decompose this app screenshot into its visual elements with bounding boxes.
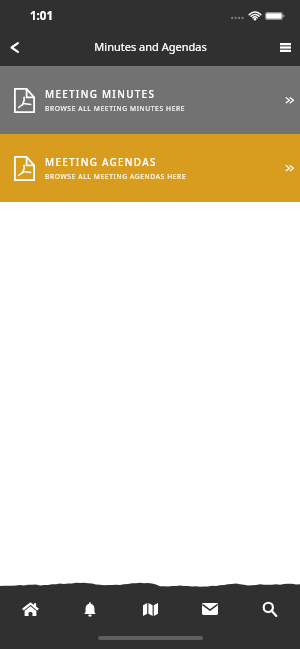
staticText: 1:01 <box>30 8 53 24</box>
staticText: MEETING MINUTES <box>45 87 156 100</box>
button[interactable]: MEETING MINUTES <box>0 66 300 134</box>
button[interactable]: Notifications <box>60 587 120 631</box>
button[interactable]: Back <box>0 28 28 66</box>
button[interactable]: Home <box>0 587 60 631</box>
button[interactable]: Menu <box>270 28 300 66</box>
staticText: Minutes and Agendas <box>94 39 207 54</box>
staticText: BROWSE ALL MEETING AGENDAS HERE <box>45 172 187 181</box>
staticText: MEETING AGENDAS <box>45 155 157 168</box>
button[interactable]: Search <box>240 587 300 631</box>
staticText: BROWSE ALL MEETING MINUTES HERE <box>45 104 186 113</box>
button[interactable]: Mail <box>180 587 240 631</box>
button[interactable]: MEETING AGENDAS <box>0 134 300 202</box>
button[interactable]: Map <box>120 587 180 631</box>
